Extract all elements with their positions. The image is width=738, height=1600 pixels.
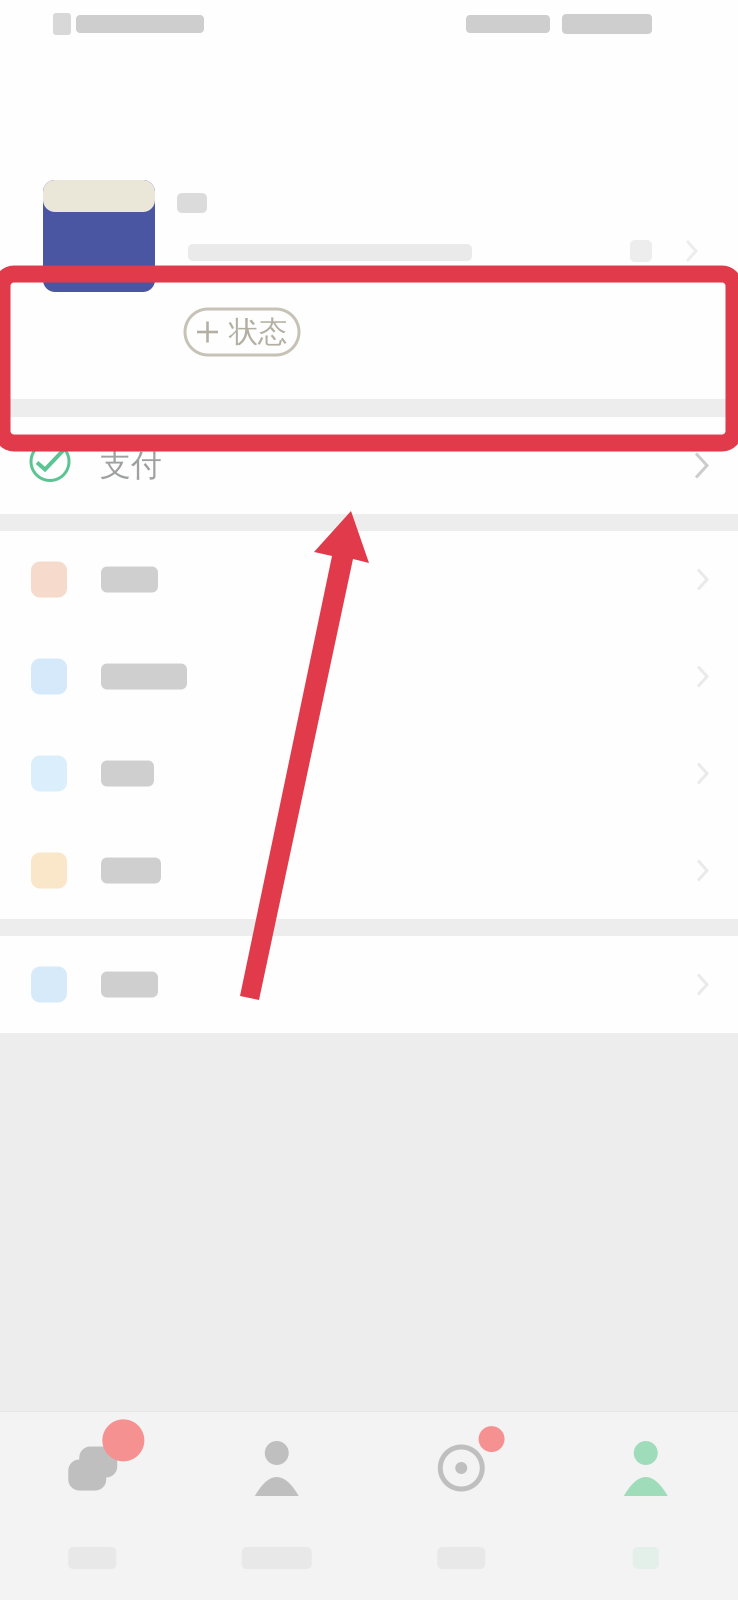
button[interactable]: [0, 725, 738, 822]
button[interactable]: [0, 936, 738, 1033]
button[interactable]: 支付: [0, 417, 738, 514]
button[interactable]: 微信: [0, 1437, 184, 1569]
button[interactable]: 发现: [369, 1437, 553, 1569]
button[interactable]: [0, 822, 738, 919]
staticText: 状态: [229, 314, 287, 350]
button[interactable]: 我: [553, 1437, 738, 1569]
button[interactable]: [0, 628, 738, 725]
button[interactable]: 状态: [185, 309, 299, 355]
button[interactable]: [0, 62, 738, 309]
button[interactable]: [0, 531, 738, 628]
staticText: 支付: [100, 447, 162, 484]
button[interactable]: 通讯录: [184, 1437, 369, 1569]
